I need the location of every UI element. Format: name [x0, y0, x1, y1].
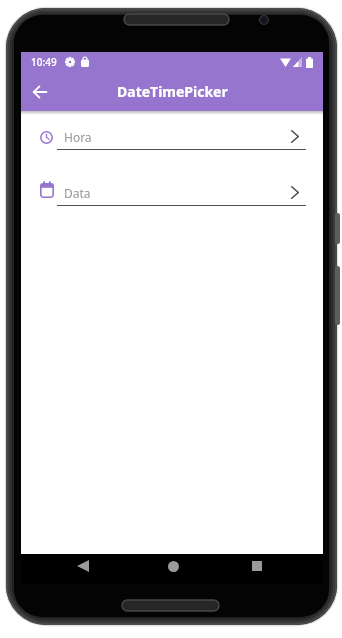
button[interactable] — [26, 78, 53, 105]
button[interactable] — [161, 554, 185, 578]
button[interactable] — [71, 554, 95, 578]
button[interactable]: Hora — [21, 123, 323, 165]
staticText: 10:49 — [31, 55, 57, 69]
staticText: DateTimePicker — [117, 82, 228, 101]
staticText: Data — [64, 185, 91, 201]
button[interactable]: Data — [21, 179, 323, 221]
staticText: Hora — [64, 129, 92, 145]
button[interactable] — [245, 554, 269, 578]
